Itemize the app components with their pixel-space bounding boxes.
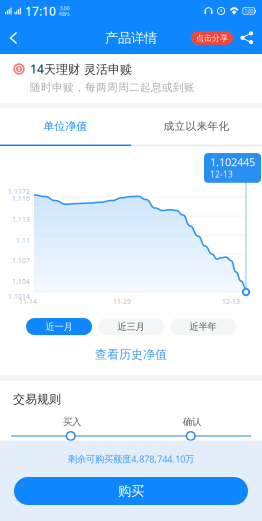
staticText: 点击分享 [196,33,228,43]
staticText: 1.1014 [8,292,30,301]
button[interactable]: 点击分享 [191,31,233,45]
staticText: 近半年 [189,321,216,332]
staticText: 成立以来年化 [163,120,229,133]
staticText: 12-13 [210,169,233,180]
button[interactable]: 查看历史净值 [95,335,167,375]
staticText: KB/s [59,10,70,17]
staticText: 1.104 [12,277,30,286]
staticText: 购买 [118,483,144,499]
staticText: 12-13 [222,297,240,306]
staticText: 1.11 [16,236,30,245]
button[interactable]: 近三月 [98,318,164,335]
staticText: 1.113 [12,215,30,224]
staticText: 交易规则 [13,392,61,406]
staticText: 1.107 [12,256,30,265]
staticText: 17:10 [25,3,56,19]
button[interactable]: 成立以来年化 [131,108,262,146]
staticText: 产品详情 [105,30,157,46]
staticText: 买入 [63,416,81,428]
staticText: 1.1172 [8,187,30,196]
staticText: 近三月 [117,321,144,332]
staticText: 随时申赎，每两周周二起息或到账 [30,81,195,94]
button[interactable]: 单位净值 [0,108,131,146]
staticText: 近一月 [45,321,72,332]
staticText: 11-29 [113,297,131,306]
staticText: 3.00 [59,5,69,12]
staticText: 1.116 [12,194,30,203]
staticText: 1.102445 [210,155,255,169]
staticText: 确认 [183,416,201,428]
button[interactable]: 购买 [14,477,248,505]
button[interactable]: 分享 [233,26,262,49]
staticText: 查看历史净值 [95,347,167,362]
staticText: 100 [244,7,253,15]
staticText: 剩余可购买额度4,878,744.10万 [68,453,194,465]
staticText: 单位净值 [43,120,87,133]
staticText: 11-14 [19,297,37,306]
button[interactable]: 近一月 [26,318,92,335]
button[interactable]: 近半年 [170,318,236,335]
button[interactable]: 返回 [0,25,27,50]
staticText: 14天理财 灵活申赎 [30,61,132,77]
